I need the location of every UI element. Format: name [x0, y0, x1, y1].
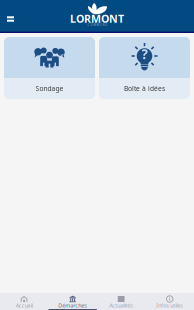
button[interactable]: Actualités	[97, 293, 145, 310]
button[interactable]: Démarches	[48, 293, 97, 310]
staticText: Actualités	[109, 302, 133, 309]
button[interactable]: Infos utiles	[145, 293, 194, 310]
button[interactable]: Sondage	[4, 37, 95, 99]
button[interactable]: Menu	[2, 2, 19, 31]
button[interactable]: ?	[99, 37, 190, 99]
staticText: LORMONT	[70, 11, 124, 26]
staticText: Sondage	[35, 84, 63, 93]
staticText: Infos utiles	[156, 302, 183, 309]
staticText: Boîte à idées	[124, 84, 165, 93]
staticText: ?	[141, 45, 147, 63]
staticText: Démarches	[58, 302, 87, 309]
button[interactable]: Accueil	[0, 293, 48, 310]
staticText: C O M M U N E	[87, 23, 106, 27]
staticText: Accueil	[16, 302, 33, 309]
